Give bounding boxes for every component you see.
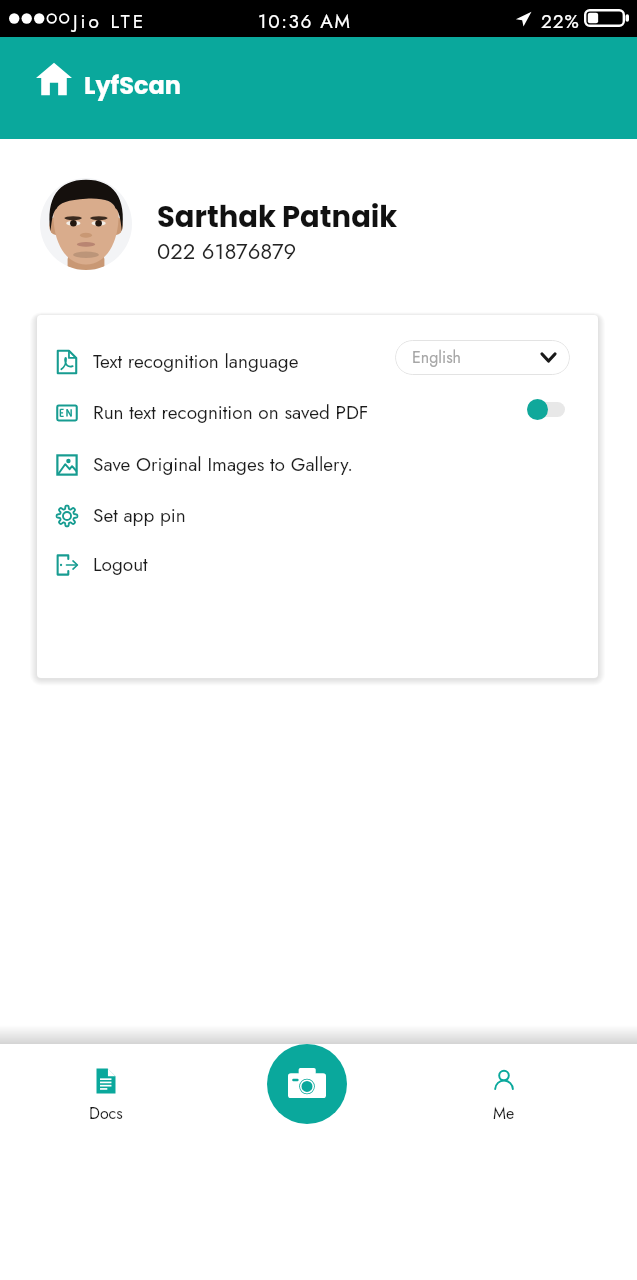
- other: Home: [36, 62, 72, 96]
- staticText: Logout: [93, 551, 148, 578]
- staticText: 22%: [541, 8, 580, 35]
- staticText: LyfScan: [84, 69, 182, 103]
- button[interactable]: Scan with camera: [267, 1044, 347, 1124]
- button[interactable]: Home: [36, 62, 182, 96]
- button[interactable]: Set app pin: [37, 490, 598, 541]
- staticText: 10:36 AM: [258, 8, 352, 35]
- button[interactable]: Docs: [56, 1068, 156, 1125]
- button[interactable]: English: [395, 340, 570, 375]
- staticText: English: [412, 346, 462, 369]
- staticText: Run text recognition on saved PDF: [93, 399, 369, 426]
- button[interactable]: Logout: [37, 539, 598, 590]
- staticText: Docs: [89, 1102, 123, 1125]
- staticText: Save Original Images to Gallery.: [93, 451, 354, 478]
- staticText: Text recognition language: [93, 348, 299, 375]
- button[interactable]: Me: [454, 1068, 554, 1125]
- button[interactable]: Run text recognition on saved PDF: [37, 387, 598, 438]
- button[interactable]: Save Original Images to Gallery.: [37, 439, 598, 490]
- button[interactable]: Run text recognition on saved PDF toggle: [527, 399, 565, 420]
- staticText: Jio LTE: [73, 8, 147, 35]
- staticText: Sarthak Patnaik: [157, 197, 398, 238]
- button[interactable]: Text recognition language: [37, 336, 598, 387]
- staticText: Me: [493, 1102, 515, 1125]
- staticText: Set app pin: [93, 502, 186, 529]
- staticText: 022 61876879: [157, 235, 297, 267]
